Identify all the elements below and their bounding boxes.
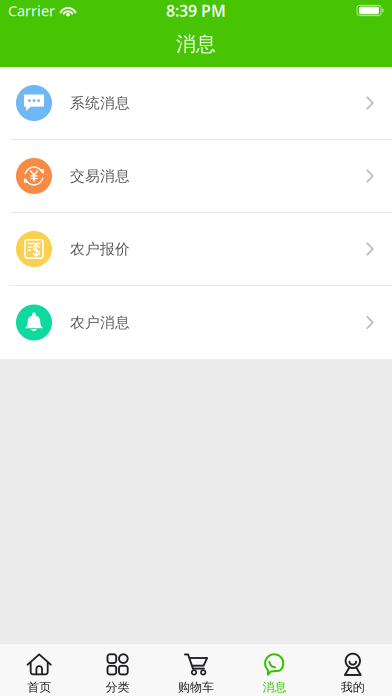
staticText: 交易消息 [70, 167, 130, 185]
button[interactable]: 交易消息 [0, 140, 392, 213]
button[interactable]: 购物车 [157, 644, 235, 696]
staticText: Carrier [8, 1, 55, 20]
button[interactable]: 农户报价 [0, 213, 392, 286]
staticText: 系统消息 [70, 94, 130, 112]
staticText: 8:39 PM [166, 0, 226, 21]
staticText: 购物车 [178, 680, 214, 695]
staticText: 农户报价 [70, 240, 130, 258]
staticText: 分类 [106, 680, 130, 695]
button[interactable]: 首页 [0, 644, 78, 696]
button[interactable]: 农户消息 [0, 286, 392, 359]
button[interactable]: 消息 [235, 644, 314, 696]
button[interactable]: 分类 [78, 644, 157, 696]
staticText: 农户消息 [70, 313, 130, 331]
staticText: 首页 [27, 680, 51, 695]
button[interactable]: 我的 [314, 644, 392, 696]
button[interactable]: 系统消息 [0, 67, 392, 140]
staticText: 我的 [341, 680, 365, 695]
staticText: 消息 [262, 680, 286, 695]
staticText: 消息 [176, 32, 216, 56]
